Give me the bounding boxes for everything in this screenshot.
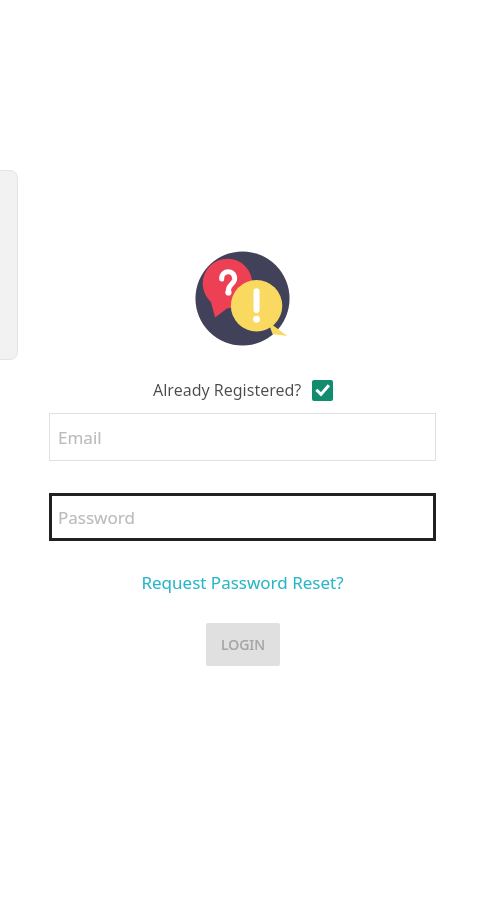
staticText: LOGIN [221, 635, 266, 654]
button[interactable]: Email [49, 413, 436, 461]
staticText: Request Password Reset? [141, 571, 344, 594]
button[interactable]: Already Registered? [149, 377, 337, 403]
staticText: Already Registered? [153, 379, 302, 401]
button[interactable]: LOGIN [206, 623, 280, 666]
other: App logo [194, 250, 291, 347]
button[interactable]: Request Password Reset? [133, 567, 352, 598]
staticText: Password [58, 506, 135, 529]
staticText: Email [58, 426, 102, 449]
button[interactable]: Password [49, 493, 436, 541]
button[interactable]: Already registered checkbox, checked [312, 380, 333, 401]
